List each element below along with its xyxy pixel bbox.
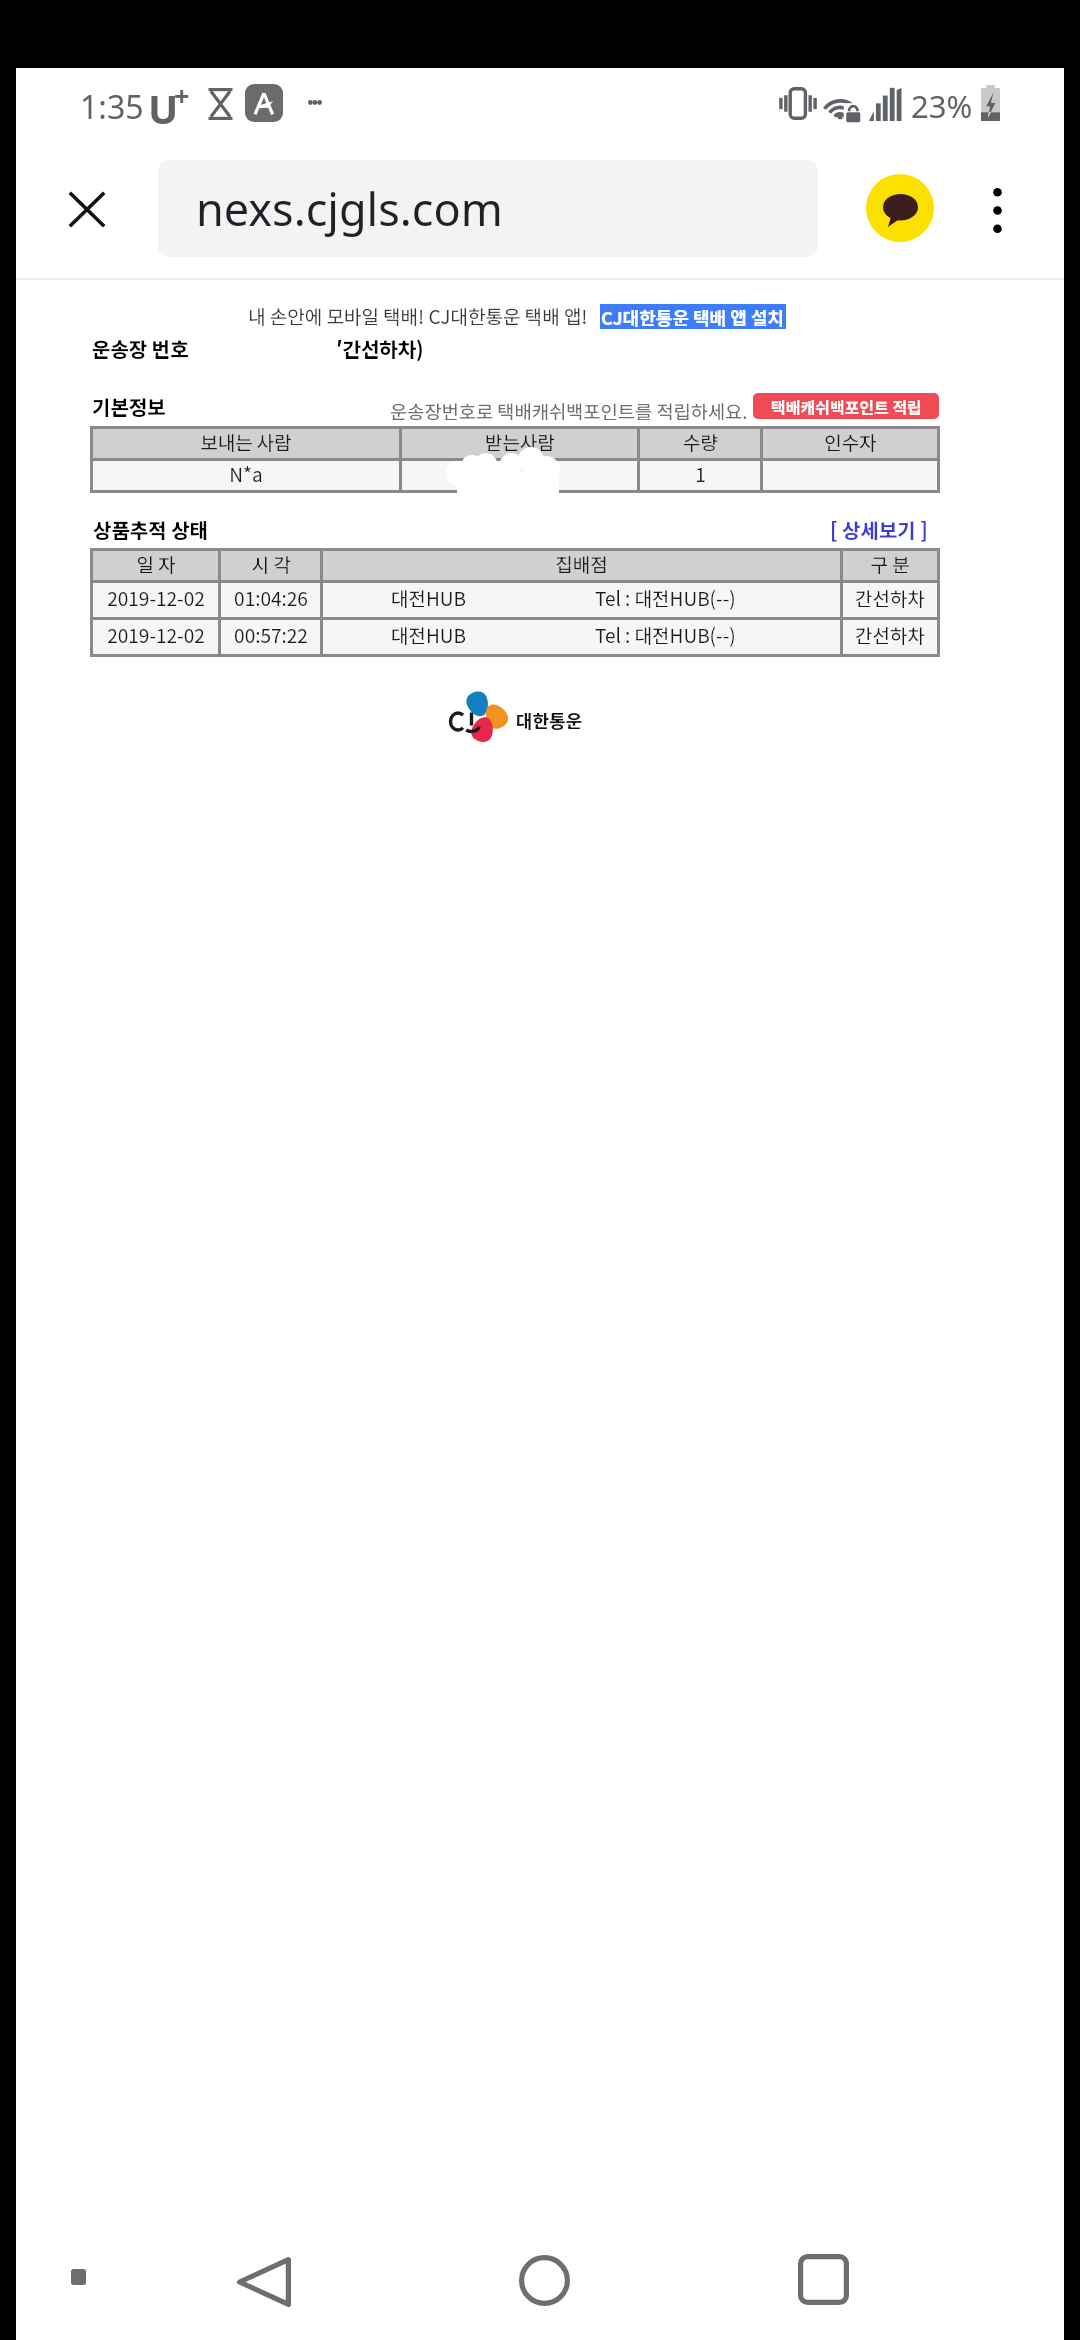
staticText: 운송장 번호 <box>92 334 189 363</box>
button[interactable]: 택배캐쉬백포인트 적립 <box>753 393 939 419</box>
button[interactable]: KakaoTalk <box>866 174 934 242</box>
staticText: Tel : 대전HUB(--) <box>595 621 736 649</box>
staticText: 대전HUB <box>391 621 466 649</box>
staticText: 1 <box>695 460 706 488</box>
staticText: 보내는 사람 <box>200 428 292 456</box>
staticText: 기본정보 <box>92 392 166 421</box>
staticText: 구 분 <box>870 550 910 578</box>
staticText: 받는사람 <box>485 428 555 456</box>
staticText: [ 상세보기 ] <box>830 515 928 544</box>
staticText: 운송장번호로 택배캐쉬백포인트를 적립하세요. <box>390 397 748 424</box>
button[interactable]: [ 상세보기 ] <box>830 515 928 544</box>
staticText: 대전HUB <box>391 584 466 612</box>
button[interactable]: CJ대한통운 택배 앱 설치 <box>600 304 786 329</box>
staticText: 간선하차 <box>855 621 925 649</box>
staticText: 2019-12-02 <box>107 621 205 649</box>
button[interactable]: nexs.cjgls.com <box>158 160 818 257</box>
button[interactable]: Back <box>204 2222 324 2340</box>
staticText: U <box>148 81 179 135</box>
button[interactable]: More options <box>962 175 1032 245</box>
button[interactable]: Recent apps <box>763 2219 883 2339</box>
staticText: 23% <box>911 85 973 127</box>
staticText: 택배캐쉬백포인트 적립 <box>771 395 922 418</box>
staticText: nexs.cjgls.com <box>196 178 503 239</box>
button[interactable]: Close <box>47 169 127 249</box>
staticText: + <box>174 77 190 114</box>
staticText: 상품추적 상태 <box>93 515 208 544</box>
staticText: 내 손안에 모바일 택배! CJ대한통운 택배 앱! <box>248 302 588 330</box>
button[interactable]: Home <box>484 2220 604 2340</box>
staticText: 일 자 <box>136 550 176 578</box>
staticText: CJ대한통운 택배 앱 설치 <box>601 304 785 329</box>
staticText: 2019-12-02 <box>107 584 205 612</box>
staticText: 01:04:26 <box>234 584 308 612</box>
staticText: 수량 <box>683 428 718 456</box>
staticText: N*a <box>229 460 263 488</box>
staticText: Tel : 대전HUB(--) <box>595 584 736 612</box>
staticText: 1:35 <box>80 85 144 129</box>
staticText: ′간선하차) <box>336 334 424 363</box>
staticText: 시 각 <box>251 550 291 578</box>
staticText: 집배점 <box>555 550 608 578</box>
staticText: 00:57:22 <box>234 621 308 649</box>
staticText: 대한통운 <box>516 707 583 733</box>
staticText: 간선하차 <box>855 584 925 612</box>
staticText: 인수자 <box>824 428 877 456</box>
